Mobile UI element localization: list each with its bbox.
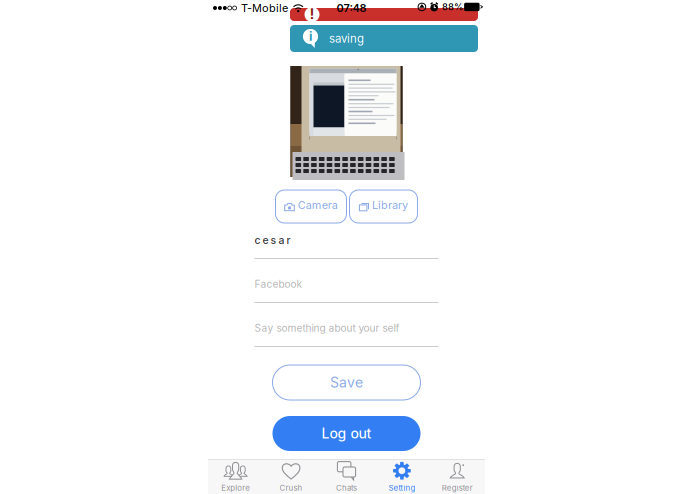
staticText: i	[309, 28, 312, 44]
staticText: Save	[330, 374, 363, 391]
staticText: Register	[442, 483, 473, 493]
button[interactable]: Crush	[263, 460, 319, 494]
staticText: 07:48	[336, 1, 366, 15]
button[interactable]: Log out	[272, 416, 420, 451]
button[interactable]: Setting	[374, 460, 430, 494]
staticText: Library	[372, 198, 408, 212]
staticText: Chats	[336, 483, 357, 493]
staticText: saving	[329, 32, 364, 45]
staticText: c e s a r	[254, 234, 290, 247]
staticText: Camera	[298, 198, 338, 212]
staticText: T-Mobile	[241, 1, 288, 15]
button[interactable]: Register	[430, 460, 485, 494]
button[interactable]: Explore	[208, 460, 263, 494]
staticText: Setting	[388, 483, 415, 493]
staticText: Say something about your self	[254, 322, 399, 334]
button[interactable]: Camera	[275, 190, 346, 223]
staticText: Facebook	[254, 278, 302, 290]
staticText: Crush	[280, 483, 303, 493]
button[interactable]: Save	[272, 365, 420, 400]
button[interactable]: Library	[349, 190, 417, 223]
staticText: Explore	[221, 483, 250, 493]
staticText: !	[309, 5, 314, 23]
staticText: 88%	[442, 1, 463, 13]
staticText: Log out	[321, 425, 371, 442]
button[interactable]: Chats	[319, 460, 374, 494]
